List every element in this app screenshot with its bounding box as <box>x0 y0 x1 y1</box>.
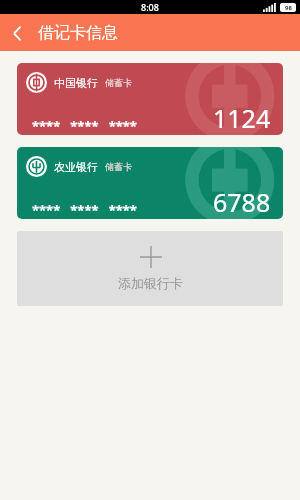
staticText: **** **** **** <box>32 117 137 135</box>
staticText: 1124 <box>213 101 271 135</box>
staticText: 6788 <box>213 185 271 219</box>
staticText: 借记卡信息 <box>38 23 118 43</box>
staticText: **** **** **** <box>32 201 137 219</box>
button[interactable]: 中国银行 <box>17 63 283 135</box>
staticText: 添加银行卡 <box>118 275 183 291</box>
staticText: 8:08 <box>141 1 159 13</box>
staticText: 储蓄卡 <box>105 77 132 88</box>
button[interactable]: 农业银行 <box>17 147 283 219</box>
staticText: 98 <box>285 4 292 12</box>
button[interactable]: Back <box>0 16 34 50</box>
staticText: 农业银行 <box>54 160 98 174</box>
button[interactable]: 添加银行卡 <box>17 231 283 306</box>
staticText: 中国银行 <box>54 76 98 90</box>
staticText: 储蓄卡 <box>105 161 132 172</box>
